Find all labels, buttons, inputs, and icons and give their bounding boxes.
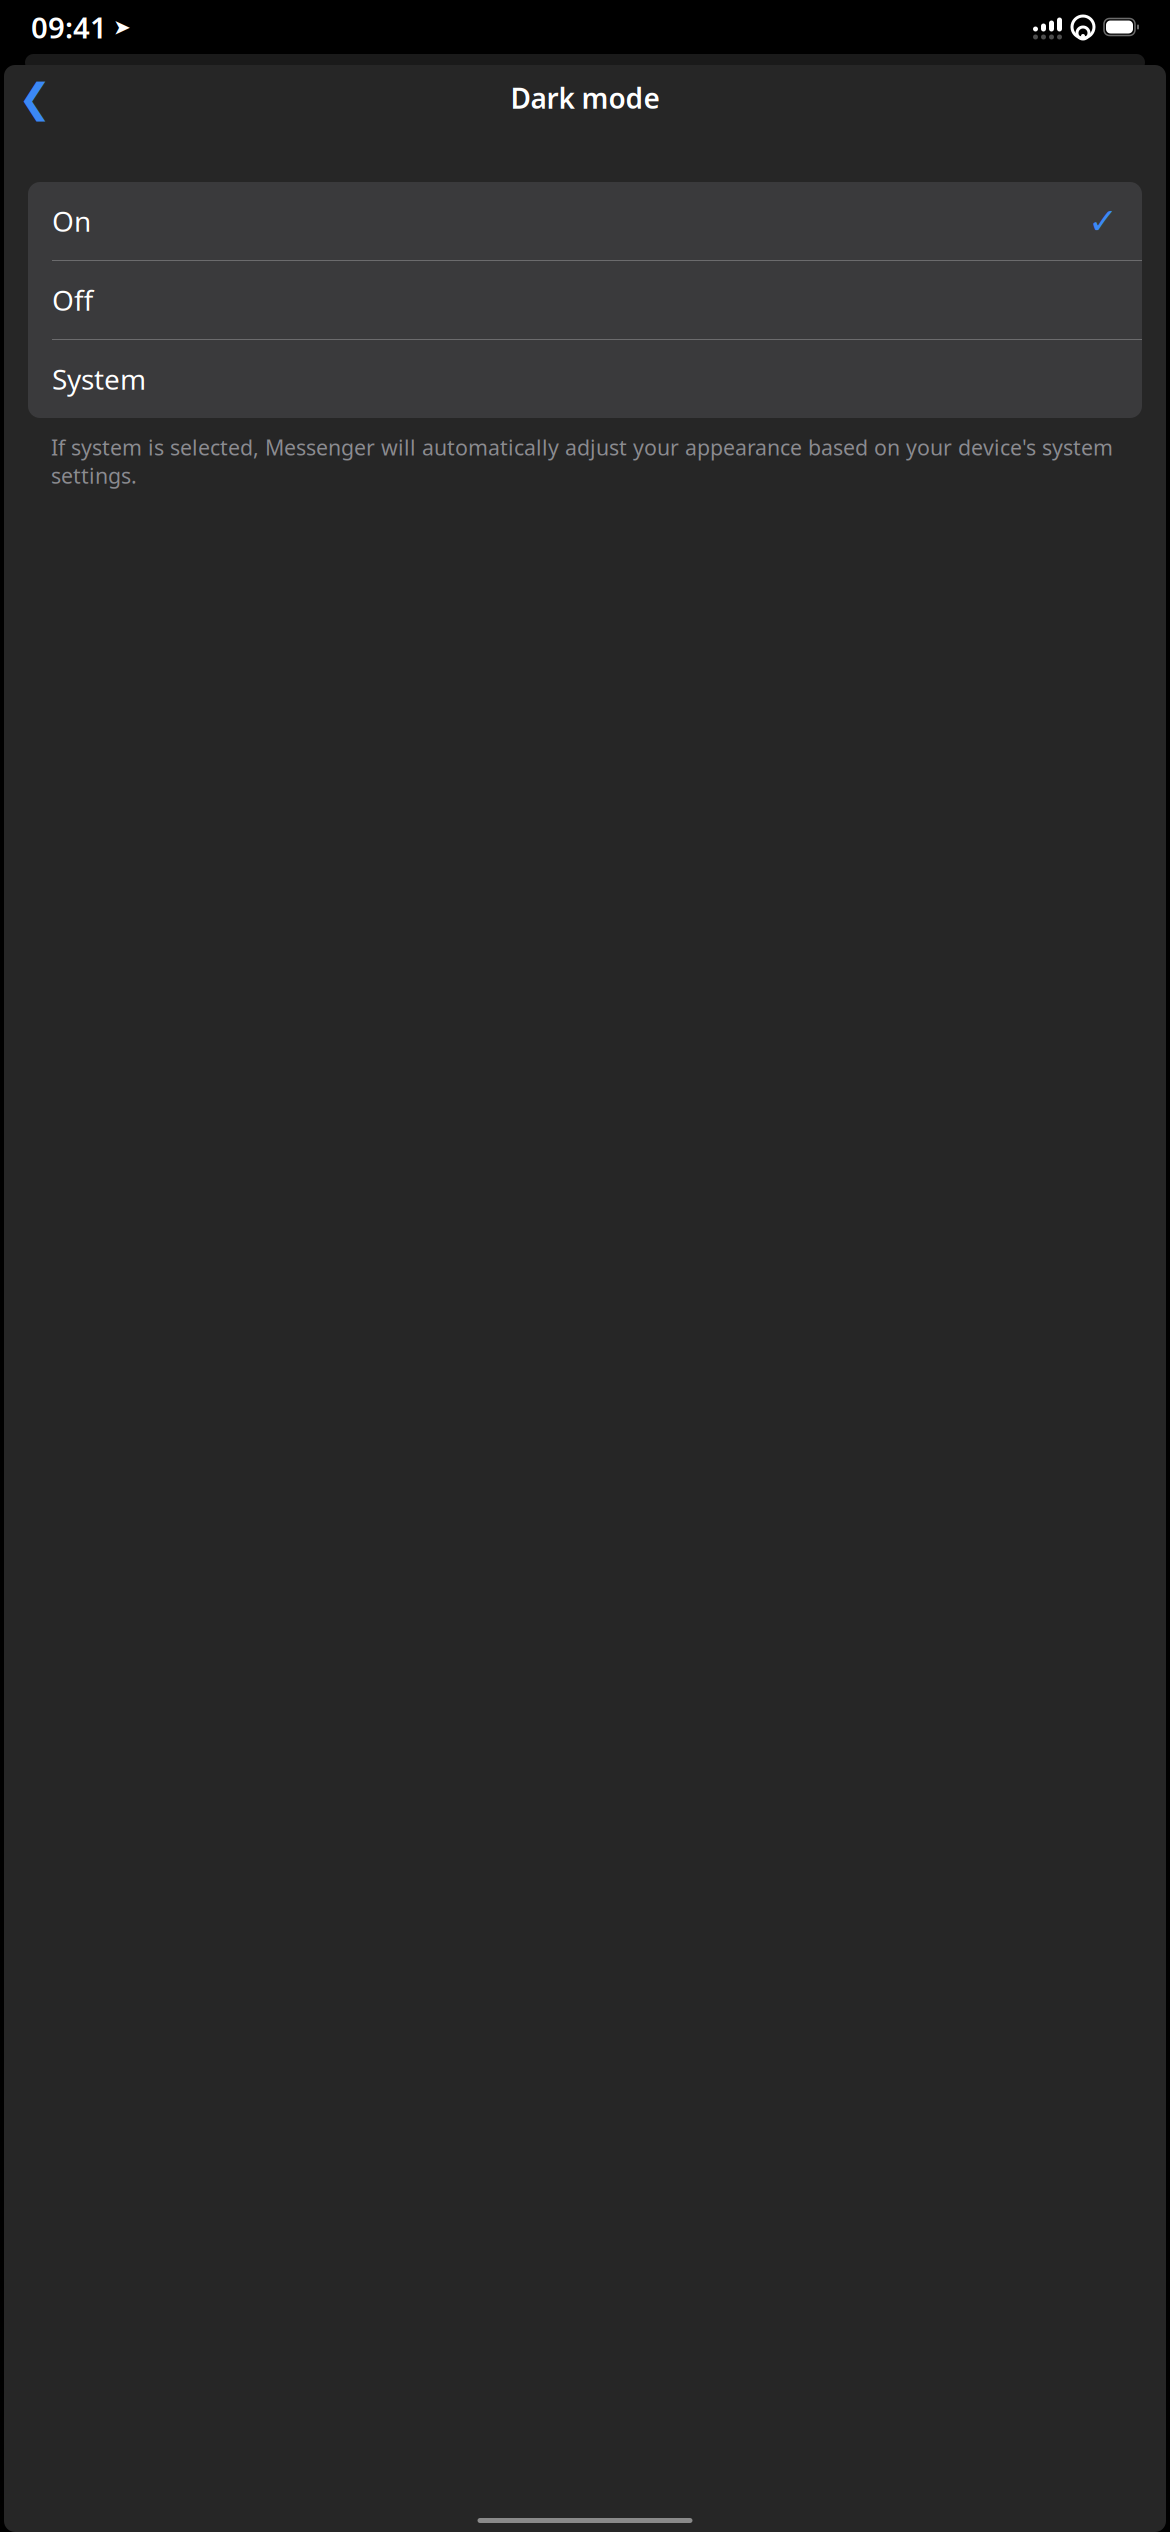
button[interactable]: Off [28, 261, 1142, 339]
button[interactable]: On [28, 182, 1142, 260]
staticText: System [52, 360, 146, 398]
staticText: 09:41 [31, 7, 107, 46]
staticText: ✓ [1088, 201, 1118, 241]
staticText: On [52, 202, 91, 240]
button[interactable]: System [28, 340, 1142, 418]
staticText: Dark mode [510, 79, 659, 117]
button[interactable]: Back [4, 78, 50, 118]
staticText: If system is selected, Messenger will au… [51, 433, 1113, 490]
staticText: ❮ [18, 75, 52, 121]
staticText: ➤ [113, 15, 131, 39]
staticText: Off [52, 281, 93, 319]
